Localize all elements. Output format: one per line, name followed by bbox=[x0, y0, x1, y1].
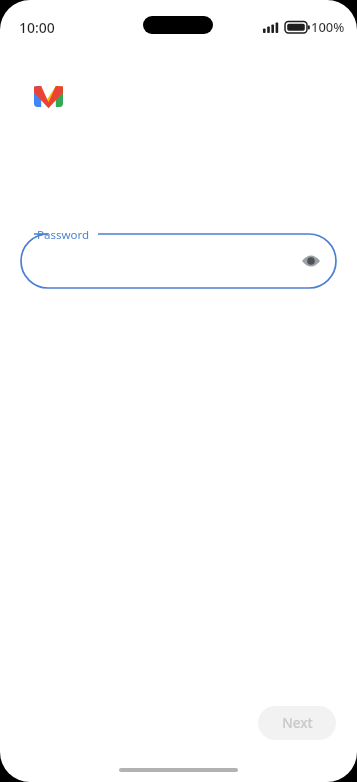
staticText: Next bbox=[282, 714, 313, 732]
button[interactable] bbox=[21, 234, 336, 288]
button[interactable]: Show password bbox=[293, 243, 329, 279]
button[interactable]: Next bbox=[258, 706, 336, 740]
staticText: 100% bbox=[311, 18, 345, 36]
staticText: 10:00 bbox=[19, 18, 55, 37]
staticText: Password bbox=[37, 227, 90, 243]
